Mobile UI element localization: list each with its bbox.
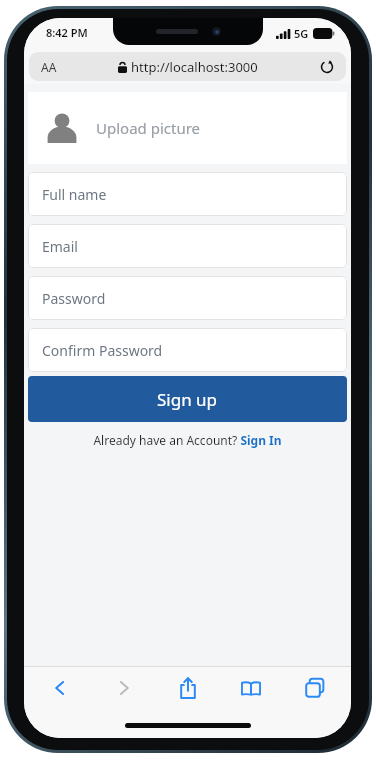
staticText: Confirm Password xyxy=(42,341,163,360)
staticText: Sign up xyxy=(157,388,218,411)
button[interactable]: Share xyxy=(166,667,210,709)
button[interactable]: Full name xyxy=(28,172,347,216)
button[interactable]: Back xyxy=(38,667,82,709)
button[interactable]: Bookmarks xyxy=(229,667,273,709)
button[interactable]: Already have an Account? Sign In xyxy=(93,432,282,448)
button[interactable]: Email xyxy=(28,224,347,268)
staticText: Password xyxy=(42,289,106,308)
staticText: Upload picture xyxy=(96,118,201,138)
button[interactable]: Password xyxy=(28,276,347,320)
staticText: http://localhost:3000 xyxy=(131,58,258,76)
button[interactable]: Upload picture xyxy=(28,92,347,164)
button[interactable]: Confirm Password xyxy=(28,328,347,372)
button[interactable]: Sign up xyxy=(28,376,347,422)
button[interactable]: Tabs xyxy=(293,667,337,709)
staticText: 8:42 PM xyxy=(46,25,88,40)
staticText: Full name xyxy=(42,185,107,204)
staticText: Email xyxy=(42,237,78,256)
button[interactable]: Forward xyxy=(102,667,146,709)
button[interactable]: Reload xyxy=(316,56,338,78)
button[interactable]: AA xyxy=(41,59,57,75)
staticText: 5G xyxy=(294,26,309,41)
